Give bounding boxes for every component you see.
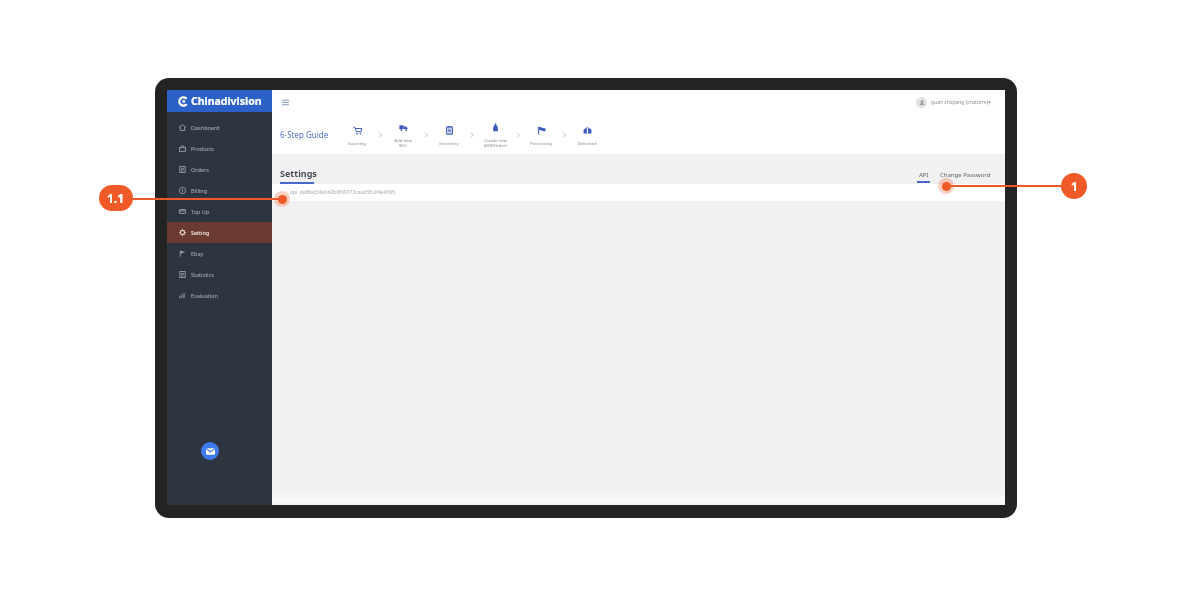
staticText: Add new SKU bbox=[394, 137, 412, 148]
staticText: Processing bbox=[530, 140, 552, 146]
staticText: Dashboard bbox=[191, 124, 220, 131]
button[interactable]: API bbox=[917, 171, 930, 183]
staticText: Delivered bbox=[577, 140, 597, 146]
staticText: Top Up bbox=[191, 208, 210, 215]
staticText: Create new ASN(Order) bbox=[484, 137, 507, 148]
button[interactable]: Inventory bbox=[431, 123, 467, 146]
button[interactable]: Top Up bbox=[167, 201, 272, 222]
button[interactable]: Setting bbox=[167, 222, 272, 243]
staticText: 1.1 bbox=[107, 190, 125, 206]
staticText: Settings bbox=[280, 167, 317, 179]
button[interactable]: Chinadivision bbox=[167, 90, 272, 112]
staticText: Evaluation bbox=[191, 292, 218, 299]
staticText: api daf8ed34eb42b8f09173cead5fc2f4e4305 bbox=[286, 189, 396, 196]
button[interactable]: Billing bbox=[167, 180, 272, 201]
staticText: Ebay bbox=[191, 250, 204, 257]
button[interactable]: Change Password bbox=[940, 171, 991, 183]
button[interactable]: Processing bbox=[523, 123, 559, 146]
button[interactable]: Dashboard bbox=[167, 117, 272, 138]
button[interactable]: Evaluation bbox=[167, 285, 272, 306]
staticText: Inventory bbox=[439, 140, 459, 146]
button[interactable]: Ebay bbox=[167, 243, 272, 264]
button[interactable]: Statistics bbox=[167, 264, 272, 285]
staticText: Statistics bbox=[191, 271, 214, 278]
button[interactable]: Menu bbox=[280, 97, 290, 107]
staticText: Chinadivision bbox=[191, 94, 262, 108]
button[interactable]: Orders bbox=[167, 159, 272, 180]
button[interactable]: Add new SKU bbox=[385, 120, 421, 148]
staticText: Billing bbox=[191, 187, 208, 194]
button[interactable]: Messages bbox=[201, 442, 219, 460]
staticText: 6-Step Guide bbox=[280, 129, 329, 140]
button[interactable]: Delivered bbox=[569, 123, 605, 146]
button[interactable]: api daf8ed34eb42b8f09173cead5fc2f4e4305 bbox=[272, 184, 1005, 201]
staticText: Orders bbox=[191, 166, 209, 173]
button[interactable]: Products bbox=[167, 138, 272, 159]
button[interactable]: Sourcing bbox=[339, 123, 375, 146]
staticText: Products bbox=[191, 145, 214, 152]
staticText: Change Password bbox=[940, 171, 991, 179]
staticText: 1 bbox=[1071, 178, 1078, 194]
button[interactable]: guan zhiqiang (cnstorm)▾ bbox=[916, 97, 991, 108]
staticText: API bbox=[919, 171, 929, 179]
staticText: Sourcing bbox=[348, 140, 366, 146]
button[interactable]: Create new ASN(Order) bbox=[477, 120, 513, 148]
staticText: guan zhiqiang (cnstorm)▾ bbox=[931, 99, 991, 106]
staticText: Setting bbox=[191, 229, 210, 236]
